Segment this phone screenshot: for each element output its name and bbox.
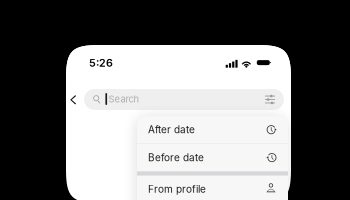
button[interactable]: Search [84,89,284,110]
button[interactable]: From profile [137,175,288,200]
staticText: 5:26 [89,56,113,69]
button[interactable]: Search filters [262,91,278,107]
button[interactable]: Before date [137,144,288,171]
button[interactable]: Back [66,89,82,110]
staticText: Before date [148,152,204,164]
staticText: After date [148,124,195,136]
staticText: Search [109,93,140,105]
staticText: From profile [148,183,206,195]
button[interactable]: After date [137,116,288,143]
